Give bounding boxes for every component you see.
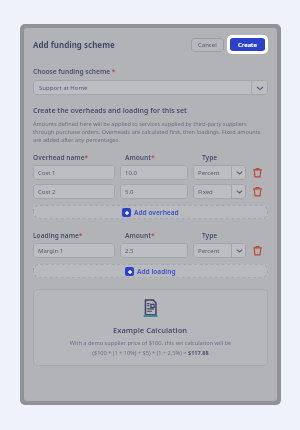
button[interactable]: Create bbox=[230, 38, 265, 51]
button[interactable]: Fixed bbox=[193, 184, 246, 199]
staticText: 5.0 bbox=[125, 188, 134, 196]
staticText: Type bbox=[202, 231, 268, 240]
staticText: With a demo supplier price of $100, this… bbox=[43, 339, 258, 347]
button[interactable]: 2.5 bbox=[120, 243, 188, 258]
staticText: Add overhead bbox=[134, 208, 179, 217]
staticText: Cost 1 bbox=[38, 169, 56, 177]
button[interactable]: 10.0 bbox=[120, 165, 188, 180]
button[interactable]: Cost 1 bbox=[33, 165, 115, 180]
staticText: Create the overheads and loading for thi… bbox=[33, 106, 187, 116]
staticText: Margin 1 bbox=[38, 247, 64, 255]
staticText: 2.5 bbox=[125, 247, 134, 255]
staticText: Percent bbox=[198, 247, 220, 255]
other: Delete row bbox=[252, 167, 263, 178]
button[interactable]: Add loading bbox=[33, 264, 268, 278]
staticText: Overhead name* bbox=[33, 153, 125, 162]
staticText: ($100 * (1 + 10%) + $5) * (1 + 2.5%) = $… bbox=[43, 349, 258, 357]
staticText: Loading name* bbox=[33, 231, 125, 240]
button[interactable]: 5.0 bbox=[120, 184, 188, 199]
staticText: 10.0 bbox=[125, 169, 137, 177]
staticText: Amount* bbox=[125, 231, 202, 240]
staticText: Choose funding scheme * bbox=[33, 67, 116, 76]
staticText: Support at Home bbox=[39, 84, 88, 92]
other: Delete row bbox=[252, 186, 263, 197]
staticText: Fixed bbox=[198, 188, 213, 196]
staticText: Add loading bbox=[137, 267, 176, 276]
button[interactable]: Percent bbox=[193, 243, 246, 258]
other: Delete row bbox=[252, 245, 263, 256]
button[interactable]: Cost 2 bbox=[33, 184, 115, 199]
button[interactable]: Percent bbox=[193, 165, 246, 180]
staticText: Cancel bbox=[198, 41, 217, 49]
staticText: Type bbox=[202, 153, 268, 162]
button[interactable]: Support at Home bbox=[33, 80, 268, 95]
button[interactable]: Margin 1 bbox=[33, 243, 115, 258]
staticText: Amounts defined here will be applied to … bbox=[33, 120, 268, 144]
staticText: Cost 2 bbox=[38, 188, 56, 196]
button[interactable]: Cancel bbox=[191, 38, 224, 52]
staticText: Amount* bbox=[125, 153, 202, 162]
button[interactable]: Add overhead bbox=[33, 205, 268, 219]
staticText: Example Calculation bbox=[113, 325, 188, 335]
staticText: Add funding scheme bbox=[33, 39, 115, 50]
staticText: Percent bbox=[198, 169, 220, 177]
staticText: Create bbox=[238, 41, 257, 49]
